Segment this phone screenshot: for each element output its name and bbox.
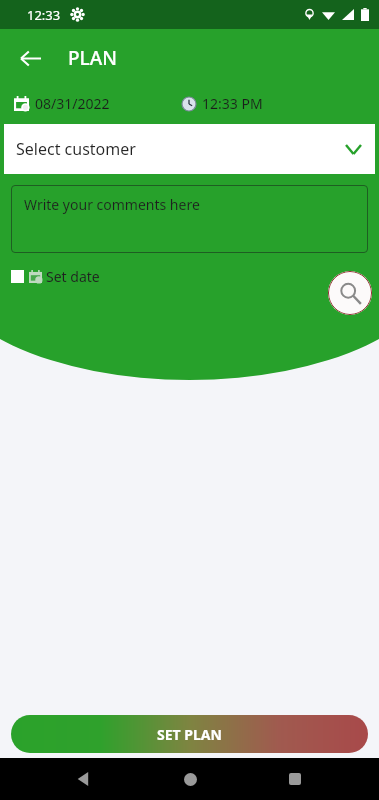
button[interactable]: Write your comments here (11, 185, 368, 253)
button[interactable]: 12:33 PM (182, 94, 263, 113)
staticText: 12:33 PM (202, 94, 263, 113)
staticText: Write your comments here (24, 195, 200, 214)
button[interactable]: Recents (273, 758, 317, 800)
button[interactable]: Set date (11, 264, 100, 288)
button[interactable]: Home (168, 758, 212, 800)
button[interactable]: Back (62, 758, 106, 800)
staticText: Set date (46, 267, 100, 286)
staticText: SET PLAN (157, 725, 222, 744)
button[interactable]: Select customer (4, 124, 375, 174)
staticText: PLAN (68, 45, 117, 71)
staticText: 08/31/2022 (35, 94, 110, 113)
button[interactable]: SET PLAN (11, 715, 368, 753)
button[interactable]: 08/31/2022 (14, 94, 110, 113)
staticText: 12:33 (27, 6, 61, 24)
button[interactable]: Back (8, 36, 52, 80)
button[interactable]: Search (328, 271, 372, 315)
staticText: Select customer (16, 138, 136, 160)
